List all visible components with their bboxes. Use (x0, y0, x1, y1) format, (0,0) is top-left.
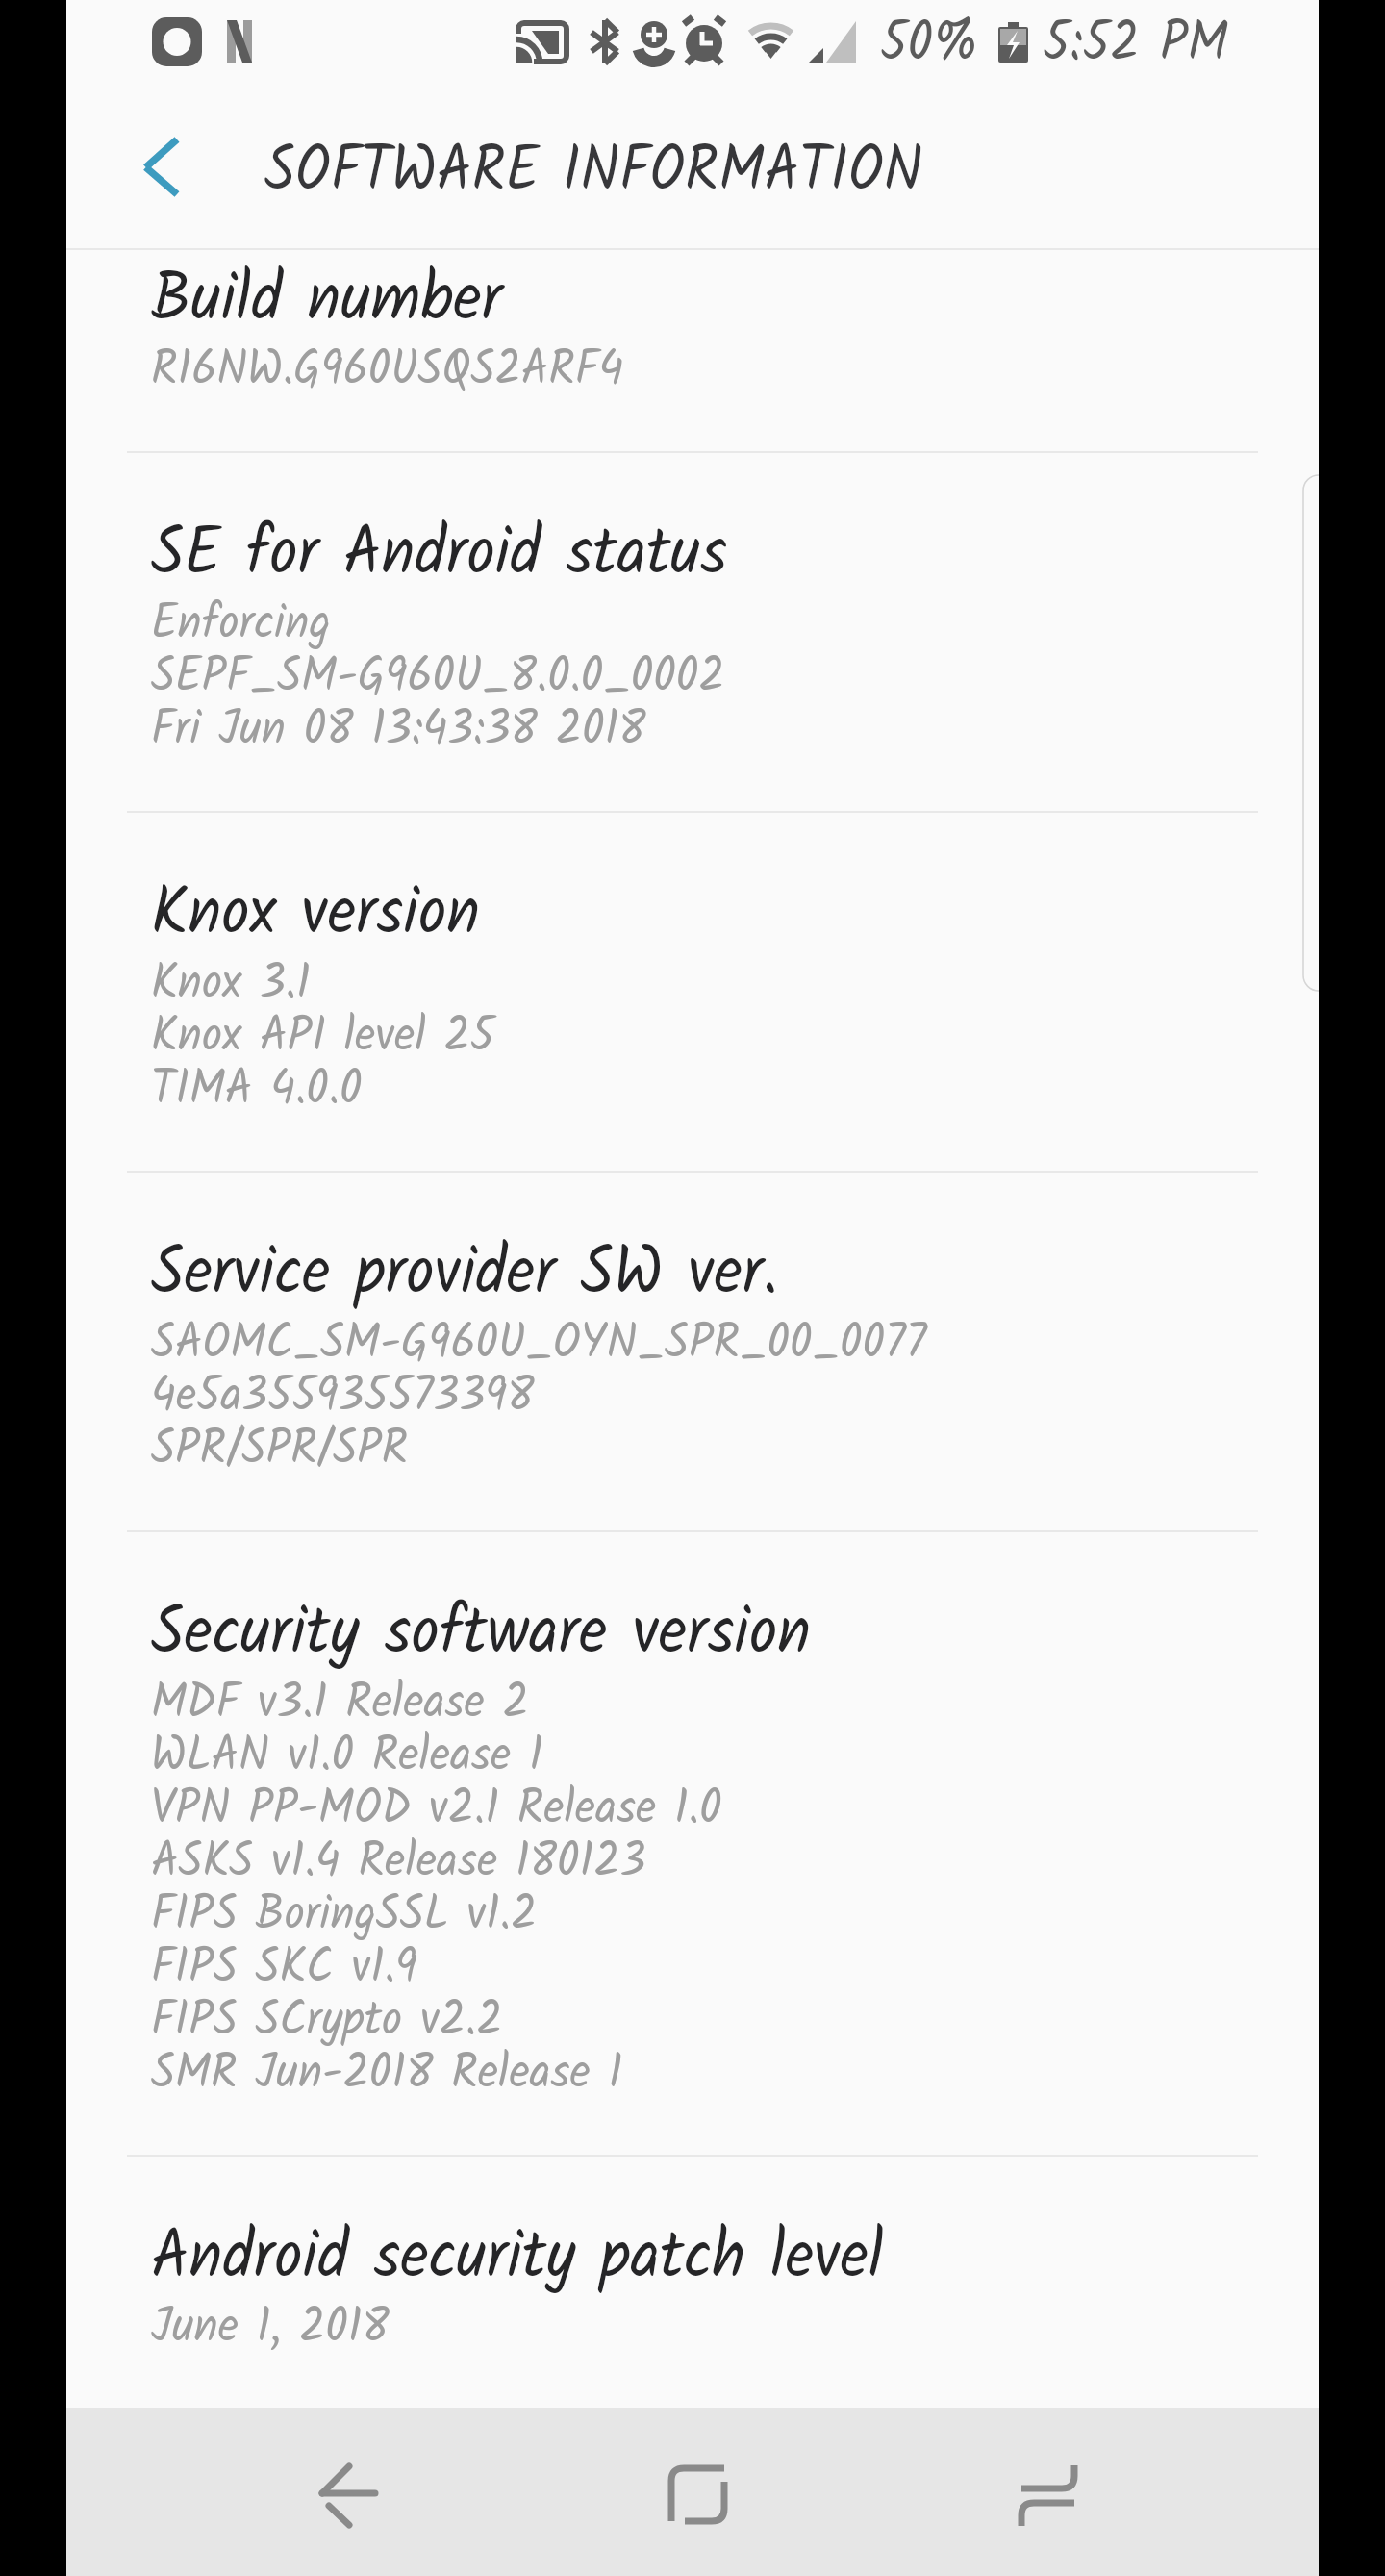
staticText: FIPS SKC v1.9 (151, 1930, 417, 2008)
button[interactable]: Home (615, 2408, 797, 2576)
staticText: Service provider SW ver. (151, 1222, 778, 1329)
staticText: June 1, 2018 (151, 2289, 390, 2367)
staticText: 4e5a355935573398 (151, 1358, 535, 1436)
button[interactable]: Recents (961, 2408, 1144, 2576)
staticText: Knox 3.1 (151, 946, 311, 1023)
button[interactable]: Android security patch level (66, 2155, 1319, 2408)
staticText: VPN PP-MOD v2.1 Release 1.0 (151, 1771, 722, 1849)
button[interactable]: Navigate up (93, 110, 209, 225)
staticText: SPR/SPR/SPR (151, 1411, 409, 1489)
staticText: SEPF_SM-G960U_8.0.0_0002 (151, 639, 725, 717)
staticText: FIPS SCrypto v2.2 (151, 1983, 503, 2060)
button[interactable]: SE for Android status (66, 451, 1319, 811)
staticText: Knox API level 25 (151, 998, 495, 1076)
button[interactable]: Back (259, 2408, 441, 2576)
staticText: SMR Jun-2018 Release 1 (151, 2035, 623, 2113)
staticText: Android security patch level (151, 2206, 884, 2313)
staticText: 5:52 PM (1043, 0, 1228, 89)
staticText: WLAN v1.0 Release 1 (151, 1718, 543, 1796)
button[interactable]: Knox version (66, 811, 1319, 1171)
staticText: MDF v3.1 Release 2 (151, 1665, 529, 1743)
staticText: FIPS BoringSSL v1.2 (151, 1877, 538, 1955)
staticText: 50% (880, 0, 979, 89)
staticText: ASKS v1.4 Release 180123 (151, 1824, 646, 1902)
staticText: Build number (151, 248, 503, 355)
staticText: SE for Android status (151, 502, 728, 609)
staticText: SOFTWARE INFORMATION (264, 121, 923, 224)
staticText: Fri Jun 08 13:43:38 2018 (151, 692, 646, 770)
button[interactable]: Service provider SW ver. (66, 1171, 1319, 1530)
staticText: SAOMC_SM-G960U_OYN_SPR_00_0077 (151, 1305, 927, 1383)
staticText: TIMA 4.0.0 (151, 1051, 363, 1129)
button[interactable]: Security software version (66, 1530, 1319, 2155)
staticText: Security software version (151, 1581, 811, 1689)
button[interactable]: Build number (66, 248, 1319, 451)
staticText: Knox version (151, 862, 480, 969)
staticText: Enforcing (151, 586, 331, 664)
staticText: R16NW.G960USQS2ARF4 (151, 332, 624, 410)
